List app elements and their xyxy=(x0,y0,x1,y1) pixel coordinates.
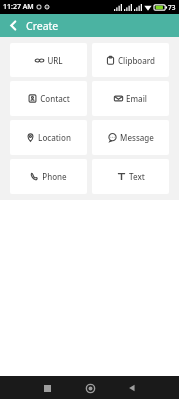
button[interactable]: Back xyxy=(121,377,143,399)
button[interactable]: Recent apps xyxy=(36,377,58,399)
staticText: Create xyxy=(26,19,59,33)
button[interactable]: Contact xyxy=(10,81,87,116)
staticText: Message xyxy=(120,132,154,143)
button[interactable]: Phone xyxy=(10,159,87,194)
staticText: 11:27 AM xyxy=(3,2,34,12)
button[interactable]: Clipboard xyxy=(92,43,169,77)
button[interactable]: Message xyxy=(92,120,169,155)
staticText: URL xyxy=(47,55,63,66)
button[interactable]: Location xyxy=(10,120,87,155)
button[interactable]: URL xyxy=(10,43,87,77)
button[interactable]: Home xyxy=(79,377,101,399)
staticText: Phone xyxy=(42,171,67,182)
button[interactable]: Email xyxy=(92,81,169,116)
staticText: Text xyxy=(129,171,145,182)
staticText: Clipboard xyxy=(118,55,155,66)
staticText: Contact xyxy=(40,93,70,104)
staticText: Email xyxy=(126,93,147,104)
staticText: Location xyxy=(38,132,71,143)
button[interactable]: Text xyxy=(92,159,169,194)
staticText: 73 xyxy=(168,3,176,12)
button[interactable]: Back xyxy=(0,14,26,37)
